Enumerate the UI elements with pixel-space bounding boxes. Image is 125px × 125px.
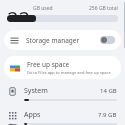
- button[interactable]: Apps: [0, 110, 125, 125]
- staticText: Free up space: [27, 60, 70, 69]
- staticText: Storage manager: [26, 36, 100, 45]
- button[interactable]: Free up space: [4, 56, 121, 79]
- staticText: 22: [7, 5, 30, 18]
- staticText: 14 GB: [100, 87, 117, 95]
- other: Storage manager: [10, 36, 19, 45]
- button[interactable]: System: [0, 86, 125, 101]
- staticText: System: [24, 86, 100, 96]
- button[interactable]: Storage manager: [4, 30, 121, 50]
- staticText: GB used: [33, 5, 53, 12]
- button[interactable]: Storage manager toggle: [100, 36, 115, 44]
- staticText: Go to Files app to manage and free up sp…: [27, 70, 111, 75]
- staticText: 256 GB total: [89, 5, 118, 12]
- staticText: 7.9 GB: [98, 111, 117, 119]
- staticText: Apps: [24, 110, 98, 120]
